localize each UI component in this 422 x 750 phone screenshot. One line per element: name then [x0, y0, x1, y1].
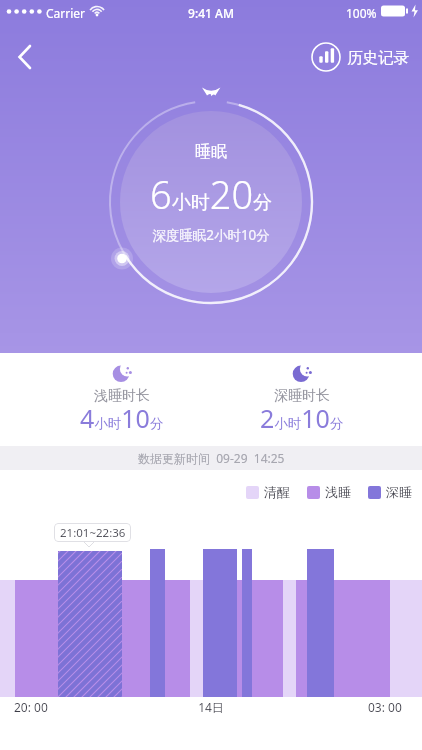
button[interactable]: 深睡时长 — [232, 362, 372, 439]
staticText: 深睡 — [386, 484, 412, 500]
staticText: 清醒 — [264, 484, 290, 500]
staticText: 数据更新时间 09-29 14:25 — [138, 450, 285, 466]
staticText: Carrier — [46, 5, 86, 21]
button[interactable]: 21:01~22:36 — [54, 523, 131, 542]
staticText: 100% — [346, 5, 377, 21]
staticText: 2小时10分 — [260, 401, 344, 435]
staticText: 浅睡时长 — [94, 387, 150, 405]
button[interactable] — [6, 40, 46, 76]
button[interactable] — [306, 40, 416, 76]
button[interactable]: 浅睡 — [307, 484, 351, 500]
staticText: 深度睡眠2小时10分 — [152, 226, 270, 244]
staticText: 20: 00 — [14, 699, 48, 715]
button[interactable]: 深睡 — [368, 484, 412, 500]
staticText: 浅睡 — [325, 484, 351, 500]
button[interactable]: 浅睡时长 — [52, 362, 192, 439]
button[interactable]: 清醒 — [246, 484, 290, 500]
staticText: 历史记录 — [347, 48, 409, 68]
staticText: 深睡时长 — [274, 387, 330, 405]
staticText: 14日 — [198, 699, 224, 715]
staticText: 6小时20分 — [150, 168, 273, 220]
staticText: 9:41 AM — [188, 5, 234, 21]
staticText: 21:01~22:36 — [60, 525, 126, 541]
staticText: 4小时10分 — [80, 401, 164, 435]
staticText: 03: 00 — [368, 699, 402, 715]
staticText: 睡眠 — [195, 142, 227, 162]
